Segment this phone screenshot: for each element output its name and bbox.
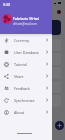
button[interactable]: User Database: [0, 46, 52, 58]
button[interactable]: Tutorial: [0, 58, 52, 70]
staticText: Fabrizzio Sfrizzi: [13, 16, 40, 21]
button[interactable]: Share: [0, 70, 52, 82]
staticText: Tutorial: [14, 62, 45, 67]
staticText: Share: [14, 74, 45, 79]
button[interactable]: About: [0, 106, 52, 118]
button[interactable]: Feedback: [0, 82, 52, 94]
staticText: Synchronize: [14, 98, 45, 103]
staticText: Feedback: [14, 86, 45, 91]
button[interactable]: Add: [55, 121, 64, 130]
staticText: Currency: [14, 38, 45, 43]
staticText: sfrizzio@mail.com: [13, 22, 37, 26]
staticText: -$12: [6, 71, 13, 75]
staticText: User Database: [14, 50, 45, 55]
staticText: About: [14, 110, 45, 115]
staticText: -$12: [6, 99, 13, 103]
button[interactable]: Synchronize: [0, 94, 52, 106]
staticText: 9:30: [3, 2, 10, 7]
staticText: -$12: [6, 85, 13, 89]
button[interactable]: Currency: [0, 34, 52, 46]
button[interactable]: Profile: [57, 10, 61, 14]
